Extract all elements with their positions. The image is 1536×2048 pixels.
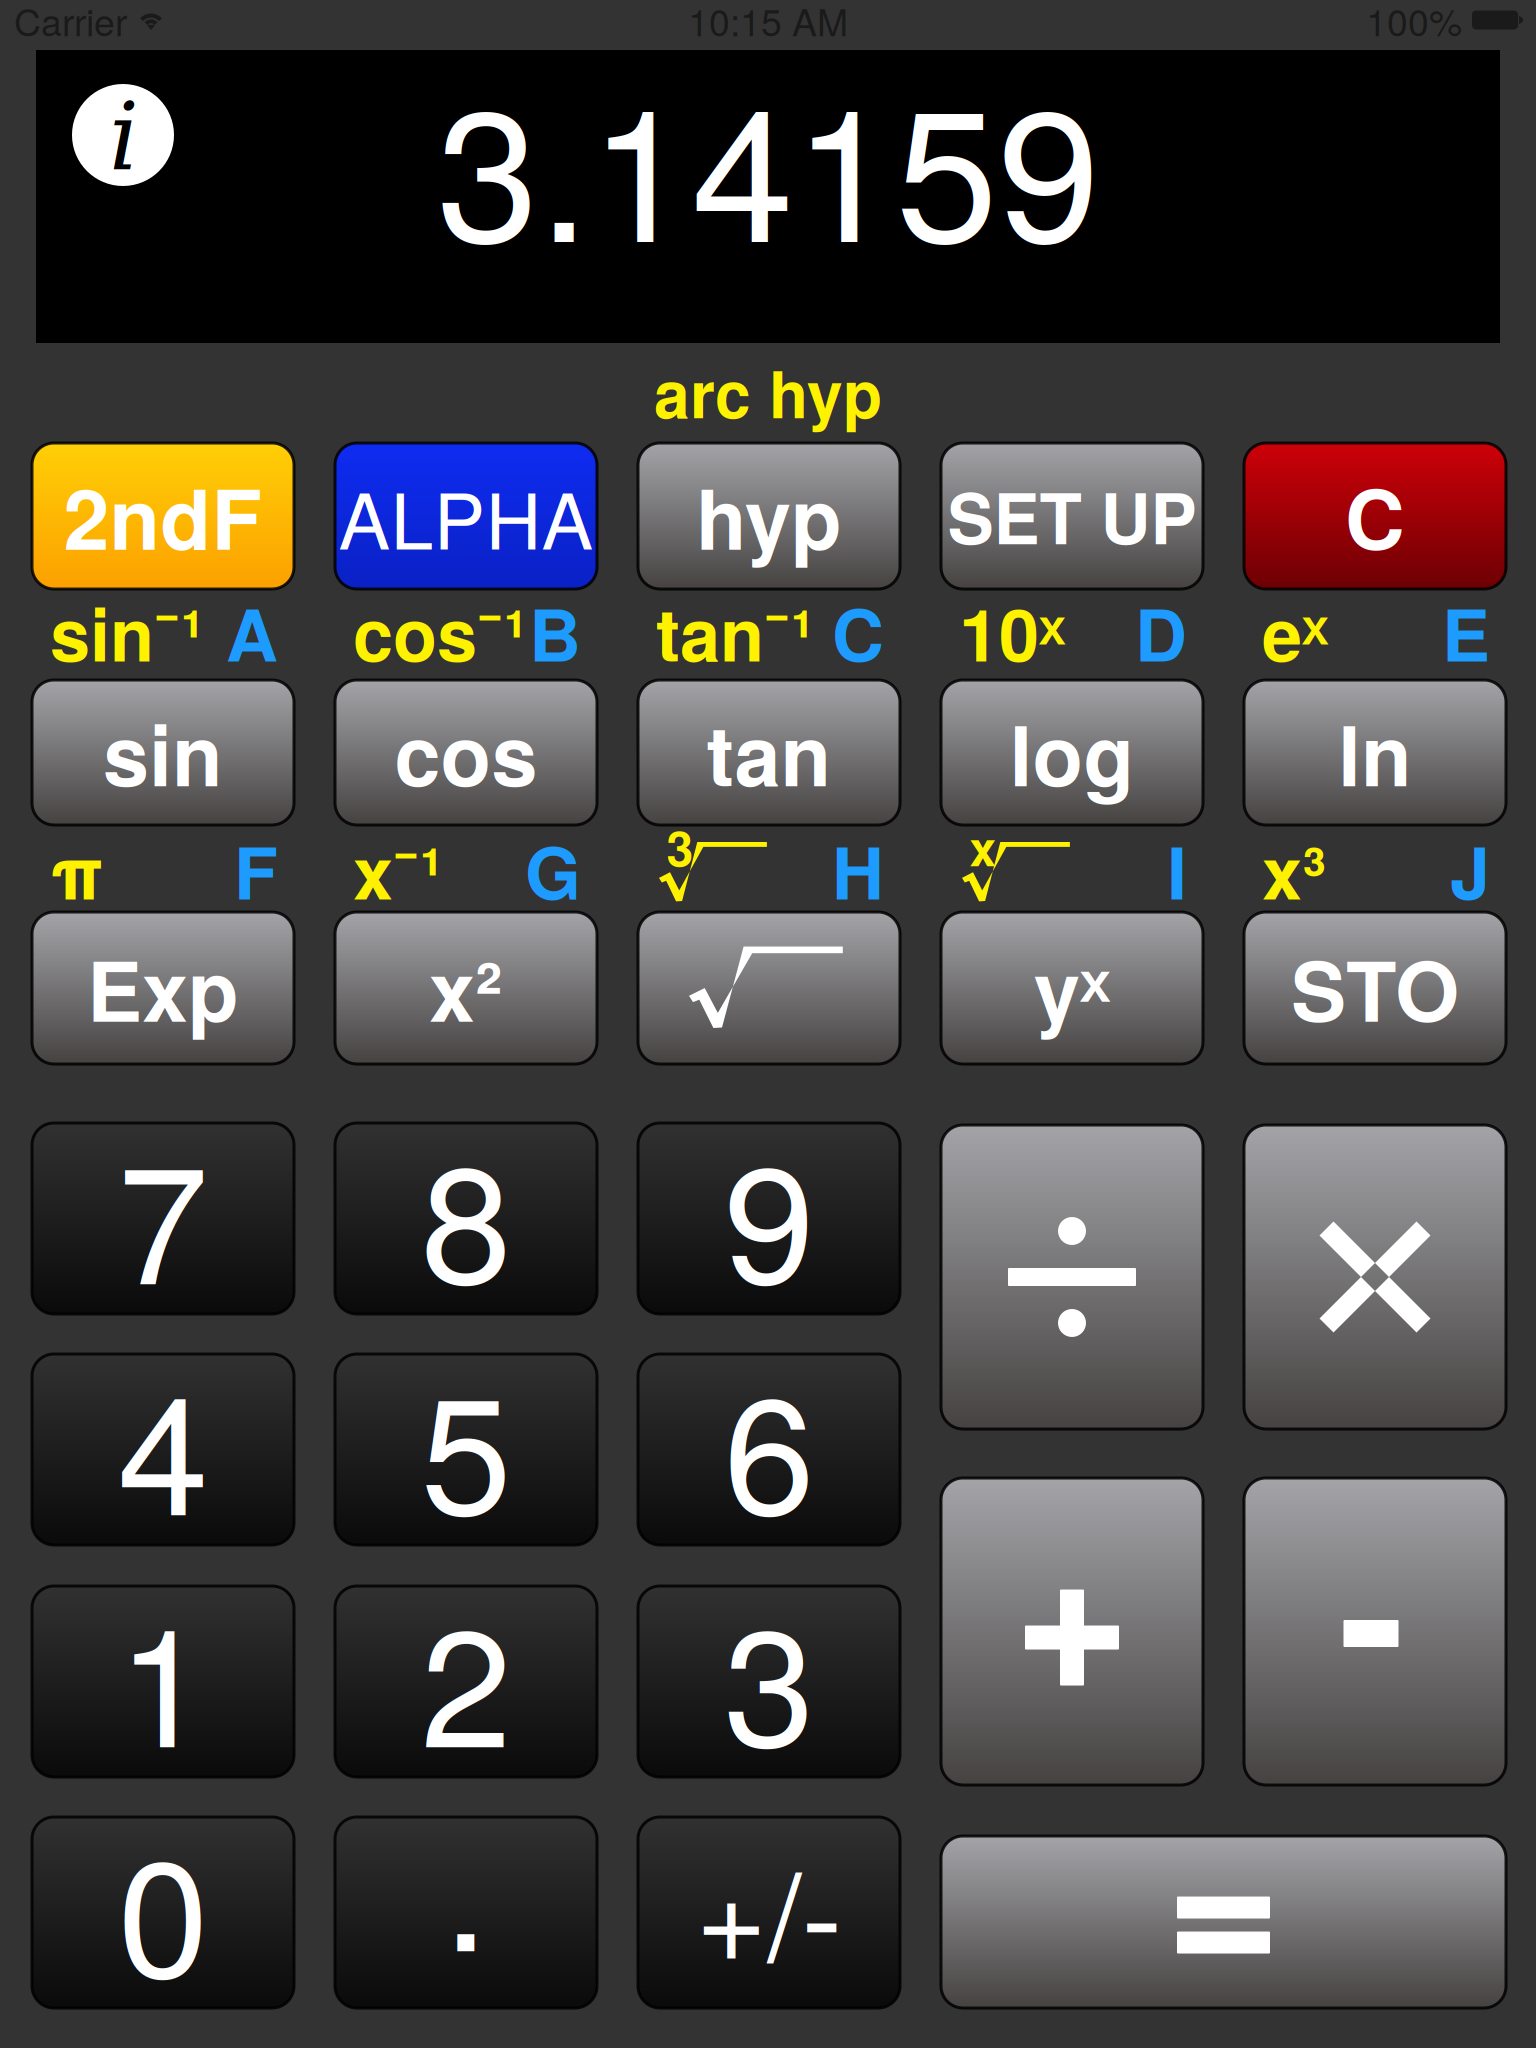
staticText: G bbox=[525, 818, 581, 921]
button[interactable]: Square root bbox=[638, 912, 900, 1064]
staticText: 2ndF bbox=[63, 457, 262, 575]
button[interactable]: 2 bbox=[335, 1564, 597, 1799]
staticText: i bbox=[109, 83, 139, 191]
staticText: 9 bbox=[723, 1096, 814, 1331]
staticText: 5 bbox=[420, 1327, 511, 1562]
button[interactable]: 0 bbox=[32, 1795, 294, 2030]
button[interactable]: Plus bbox=[941, 1478, 1203, 1785]
staticText: SET UP bbox=[947, 466, 1196, 566]
staticText: 3 bbox=[666, 812, 693, 881]
staticText: 4 bbox=[117, 1327, 208, 1562]
staticText: F bbox=[234, 818, 278, 921]
staticText: hyp bbox=[696, 457, 842, 575]
staticText: I bbox=[1167, 818, 1187, 921]
staticText: 2 bbox=[420, 1559, 511, 1794]
button[interactable]: 4 bbox=[32, 1332, 294, 1567]
staticText: 10ˣ bbox=[959, 580, 1065, 683]
button[interactable]: Equals bbox=[941, 1836, 1506, 2008]
button[interactable]: Multiply bbox=[1244, 1125, 1506, 1429]
staticText: B bbox=[529, 580, 581, 683]
staticText: E bbox=[1442, 580, 1490, 683]
staticText: 100% bbox=[1366, 0, 1462, 47]
button[interactable]: 8 bbox=[335, 1101, 597, 1336]
staticText: ln bbox=[1338, 693, 1412, 812]
staticText: +/- bbox=[695, 1821, 842, 1996]
button[interactable]: Info bbox=[72, 81, 174, 189]
button[interactable]: 7 bbox=[32, 1101, 294, 1336]
staticText: 3.14159 bbox=[436, 31, 1099, 294]
staticText: log bbox=[1009, 693, 1134, 812]
staticText: yˣ bbox=[1034, 929, 1110, 1047]
staticText: cos bbox=[394, 693, 537, 812]
button[interactable]: SET UP bbox=[941, 443, 1203, 589]
staticText: tan bbox=[706, 693, 831, 812]
button[interactable]: cos bbox=[335, 680, 597, 825]
button[interactable]: 3 bbox=[638, 1564, 900, 1799]
button[interactable]: hyp bbox=[638, 443, 900, 589]
button[interactable]: 5 bbox=[335, 1332, 597, 1567]
staticText: 3 bbox=[723, 1559, 814, 1794]
button[interactable]: Exp bbox=[32, 912, 294, 1064]
button[interactable]: 2ndF bbox=[32, 443, 294, 589]
button[interactable]: C bbox=[1244, 443, 1506, 589]
staticText: eˣ bbox=[1262, 580, 1328, 683]
staticText: tan⁻¹ bbox=[656, 580, 814, 683]
staticText: 1 bbox=[117, 1559, 208, 1794]
staticText: J bbox=[1450, 818, 1490, 921]
staticText: x⁻¹ bbox=[353, 818, 443, 921]
button[interactable]: x² bbox=[335, 912, 597, 1064]
button[interactable]: yˣ bbox=[941, 912, 1203, 1064]
button[interactable]: . bbox=[335, 1795, 597, 2030]
staticText: . bbox=[443, 1763, 489, 1998]
button[interactable]: ALPHA bbox=[335, 443, 597, 589]
button[interactable]: tan bbox=[638, 680, 900, 825]
staticText: 7 bbox=[117, 1096, 208, 1331]
staticText: C bbox=[1345, 457, 1405, 575]
button[interactable]: 6 bbox=[638, 1332, 900, 1567]
staticText: x bbox=[969, 812, 996, 881]
button[interactable]: ln bbox=[1244, 680, 1506, 825]
button[interactable]: Minus bbox=[1244, 1478, 1506, 1785]
staticText: ALPHA bbox=[338, 461, 593, 571]
button[interactable]: STO bbox=[1244, 912, 1506, 1064]
staticText: A bbox=[226, 580, 278, 683]
staticText: H bbox=[832, 818, 884, 921]
staticText: cos⁻¹ bbox=[353, 580, 527, 683]
staticText: C bbox=[832, 580, 884, 683]
staticText: x² bbox=[429, 929, 503, 1047]
staticText: 0 bbox=[117, 1790, 208, 2025]
staticText: D bbox=[1135, 580, 1187, 683]
staticText: sin⁻¹ bbox=[50, 580, 204, 683]
staticText: Carrier bbox=[14, 0, 127, 47]
staticText: sin bbox=[103, 693, 223, 812]
button[interactable]: 1 bbox=[32, 1564, 294, 1799]
button[interactable]: Divide bbox=[941, 1125, 1203, 1429]
button[interactable]: log bbox=[941, 680, 1203, 825]
staticText: x³ bbox=[1262, 818, 1326, 921]
staticText: Exp bbox=[87, 929, 239, 1047]
button[interactable]: +/- bbox=[638, 1817, 900, 2008]
staticText: π bbox=[50, 818, 103, 921]
staticText: 6 bbox=[723, 1327, 814, 1562]
button[interactable]: 9 bbox=[638, 1101, 900, 1336]
button[interactable]: sin bbox=[32, 680, 294, 825]
staticText: STO bbox=[1291, 929, 1459, 1047]
staticText: 8 bbox=[420, 1096, 511, 1331]
staticText: 10:15 AM bbox=[688, 0, 848, 47]
staticText: arc hyp bbox=[654, 346, 882, 438]
